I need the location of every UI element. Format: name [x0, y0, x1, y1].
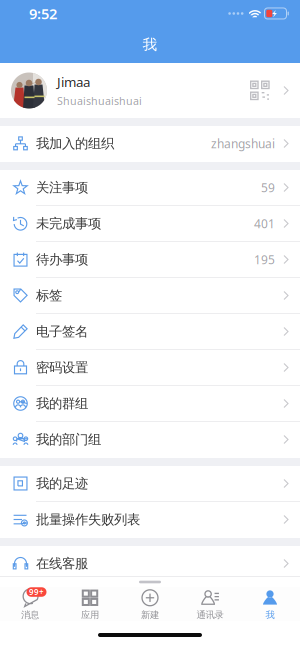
staticText: 在线客服	[36, 555, 88, 572]
staticText: 我	[265, 609, 274, 621]
button[interactable]: 应用	[60, 584, 120, 624]
staticText: 标签	[36, 287, 62, 304]
staticText: 电子签名	[36, 323, 88, 340]
button[interactable]: 标签	[0, 278, 300, 314]
staticText: Jimaa	[57, 73, 90, 91]
staticText: 我	[142, 35, 157, 53]
button[interactable]: 我	[240, 584, 300, 624]
staticText: 99+	[29, 587, 44, 597]
staticText: 关注事项	[36, 179, 88, 196]
button[interactable]: 我的群组	[0, 386, 300, 422]
staticText: zhangshuai	[211, 135, 275, 151]
button[interactable]: 电子签名	[0, 314, 300, 350]
staticText: 59	[261, 179, 275, 195]
staticText: 新建	[141, 609, 159, 621]
staticText: 应用	[81, 609, 99, 621]
button[interactable]: 未完成事项	[0, 206, 300, 242]
staticText: 消息	[21, 609, 39, 621]
staticText: 密码设置	[36, 359, 88, 376]
staticText: 195	[254, 251, 275, 267]
button[interactable]: 我的部门组	[0, 422, 300, 458]
button[interactable]: 通讯录	[180, 584, 240, 624]
staticText: 我的群组	[36, 395, 88, 412]
staticText: Shuaishuaishuai	[57, 94, 142, 108]
staticText: 9:52	[29, 4, 57, 23]
staticText: 我的部门组	[36, 431, 101, 448]
button[interactable]: 新建	[120, 584, 180, 624]
staticText: 批量操作失败列表	[36, 511, 140, 528]
staticText: 401	[254, 215, 275, 231]
staticText: 待办事项	[36, 251, 88, 268]
staticText: 我的足迹	[36, 475, 88, 492]
staticText: 我加入的组织	[36, 135, 114, 152]
staticText: 通讯录	[196, 609, 223, 621]
button[interactable]: Jimaa	[0, 63, 300, 118]
button[interactable]: 关注事项	[0, 170, 300, 206]
staticText: 未完成事项	[36, 215, 101, 232]
button[interactable]: 批量操作失败列表	[0, 502, 300, 538]
button[interactable]: 密码设置	[0, 350, 300, 386]
button[interactable]: 我加入的组织	[0, 126, 300, 162]
button[interactable]: 我的足迹	[0, 466, 300, 502]
button[interactable]: 在线客服	[0, 546, 300, 582]
button[interactable]: 99+	[0, 584, 60, 624]
button[interactable]: 待办事项	[0, 242, 300, 278]
